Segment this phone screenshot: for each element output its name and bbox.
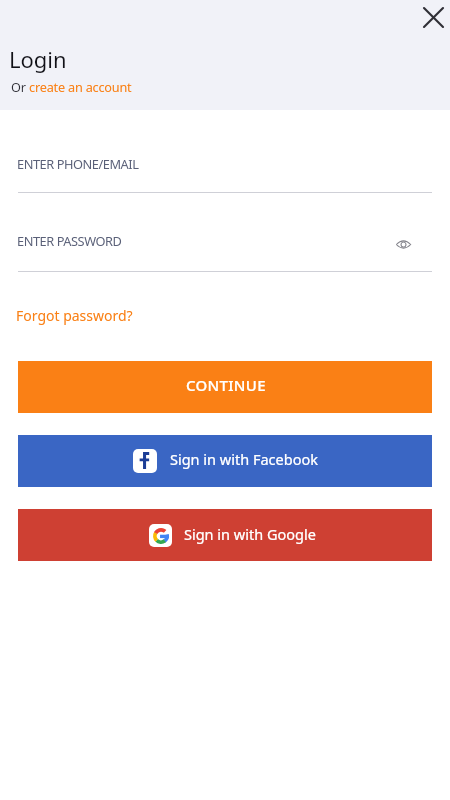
button[interactable]: create an account [29, 78, 132, 95]
button[interactable]: Forgot password? [16, 306, 133, 325]
staticText: Forgot password? [16, 306, 133, 325]
staticText: ENTER PASSWORD [17, 232, 122, 249]
button[interactable]: Sign in with Facebook [18, 435, 432, 487]
staticText: Or [11, 78, 29, 95]
staticText: Login [9, 44, 67, 74]
button[interactable]: Close [414, 0, 450, 36]
staticText: Sign in with Facebook [170, 449, 318, 469]
staticText: ENTER PHONE/EMAIL [17, 155, 139, 172]
button[interactable]: CONTINUE [18, 361, 432, 413]
staticText: Sign in with Google [184, 524, 316, 544]
button[interactable]: Sign in with Google [18, 509, 432, 561]
button[interactable]: Show password [390, 231, 417, 258]
staticText: CONTINUE [186, 375, 266, 395]
button[interactable]: ENTER PASSWORD [18, 227, 432, 272]
button[interactable]: ENTER PHONE/EMAIL [18, 148, 432, 193]
staticText: create an account [29, 78, 132, 95]
